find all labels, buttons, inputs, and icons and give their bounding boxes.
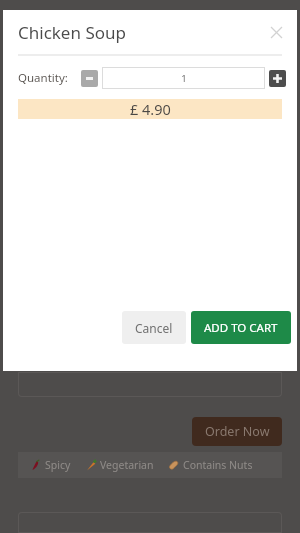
button[interactable]: Increase quantity [269,70,286,87]
button[interactable]: 1 [102,67,265,89]
button[interactable]: Close [264,20,288,44]
button[interactable]: Decrease quantity [81,70,98,87]
staticText: ADD TO CART [204,320,278,336]
staticText: Contains Nuts [183,458,253,472]
staticText: Chicken Soup [18,21,126,44]
staticText: £ 4.90 [130,99,171,119]
staticText: Cancel [135,320,173,336]
button[interactable]: ADD TO CART [191,311,291,344]
button[interactable]: Cancel [122,311,186,344]
staticText: Spicy [45,458,71,472]
button[interactable]: Order Now [192,417,282,446]
staticText: Vegetarian [100,458,154,472]
staticText: Order Now [205,423,270,440]
staticText: Quantity: [18,70,68,86]
staticText: 1 [181,72,187,85]
